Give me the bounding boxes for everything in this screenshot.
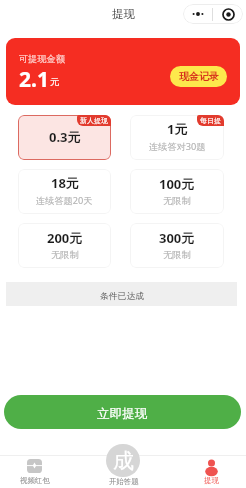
- staticText: 开始答题: [109, 477, 139, 486]
- staticText: 无限制: [163, 249, 191, 261]
- button[interactable]: 可提现金额: [6, 38, 240, 105]
- staticText: 提现: [204, 476, 219, 485]
- staticText: 每日提: [200, 116, 221, 125]
- staticText: 立即提现: [97, 406, 148, 422]
- button[interactable]: 0.3元: [18, 115, 111, 160]
- staticText: 提现: [112, 7, 135, 21]
- button[interactable]: 300元: [130, 223, 224, 268]
- button[interactable]: 现金记录: [170, 66, 227, 87]
- button[interactable]: 条件已达成: [6, 282, 237, 306]
- staticText: 成: [113, 448, 134, 474]
- button[interactable]: 提现: [189, 455, 234, 488]
- staticText: 1元: [167, 120, 188, 138]
- staticText: 18元: [51, 174, 79, 192]
- staticText: 元: [50, 76, 60, 88]
- staticText: 连续答题20天: [36, 194, 93, 207]
- staticText: 现金记录: [179, 70, 219, 83]
- staticText: 可提现金额: [19, 53, 65, 65]
- staticText: 视频红包: [20, 476, 50, 485]
- staticText: 2.1: [19, 65, 49, 94]
- staticText: 连续答对30题: [149, 140, 206, 153]
- button[interactable]: 100元: [130, 169, 224, 214]
- button[interactable]: 18元: [18, 169, 111, 214]
- button[interactable]: 1元: [130, 115, 224, 160]
- staticText: 200元: [47, 229, 83, 247]
- staticText: 无限制: [51, 249, 79, 261]
- button[interactable]: More options: [183, 4, 212, 24]
- button[interactable]: 视频红包: [12, 455, 57, 488]
- button[interactable]: 200元: [18, 223, 111, 268]
- staticText: 300元: [159, 229, 195, 247]
- staticText: 无限制: [163, 195, 191, 207]
- staticText: 新人提现: [80, 116, 108, 125]
- staticText: 100元: [159, 175, 195, 193]
- button[interactable]: 立即提现: [4, 395, 241, 429]
- button[interactable]: Start quiz: [106, 444, 140, 477]
- staticText: 条件已达成: [100, 291, 144, 302]
- button[interactable]: Close mini program: [213, 4, 243, 24]
- staticText: 0.3元: [49, 128, 81, 146]
